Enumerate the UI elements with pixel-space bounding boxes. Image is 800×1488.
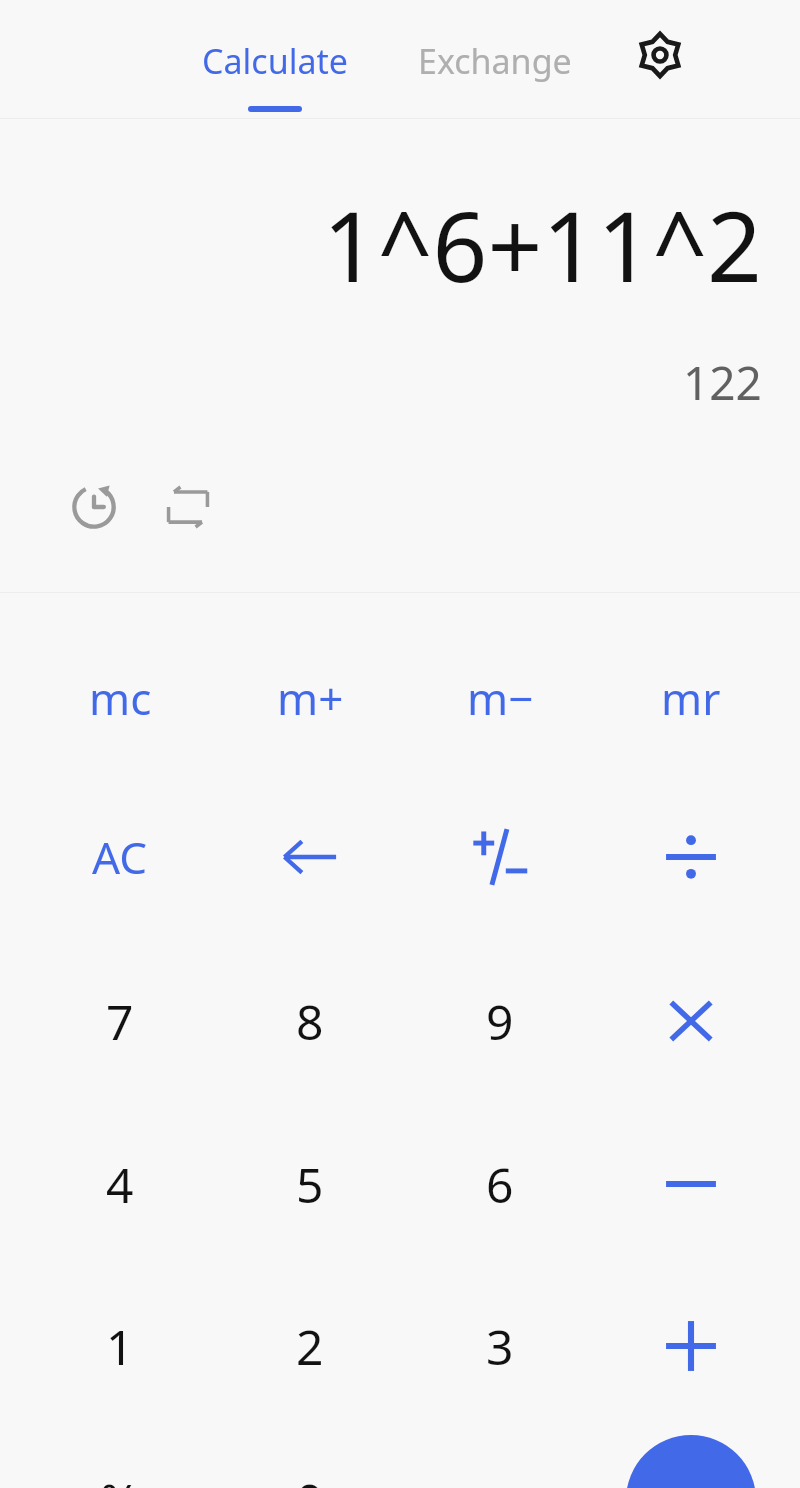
button[interactable]: Multiply xyxy=(616,961,766,1081)
button[interactable]: Settings xyxy=(610,0,800,112)
button[interactable]: History xyxy=(66,479,122,535)
staticText: 2 xyxy=(296,1314,324,1379)
button[interactable]: m− xyxy=(425,638,575,758)
button[interactable]: Backspace xyxy=(235,797,385,917)
staticText: % xyxy=(100,1468,140,1488)
button[interactable]: mc xyxy=(45,638,195,758)
button[interactable]: 2 xyxy=(235,1286,385,1406)
staticText: 9 xyxy=(486,989,514,1054)
button[interactable]: 8 xyxy=(235,961,385,1081)
button[interactable]: 0 xyxy=(235,1440,385,1488)
staticText: 1 xyxy=(106,1314,134,1379)
button[interactable]: Plus minus xyxy=(425,797,575,917)
button[interactable]: Divide xyxy=(616,797,766,917)
staticText: 1^6+11^2 xyxy=(322,179,762,310)
button[interactable]: m+ xyxy=(235,638,385,758)
button[interactable]: Minus xyxy=(616,1124,766,1244)
staticText: 5 xyxy=(296,1152,324,1217)
staticText: AC xyxy=(92,827,148,887)
button[interactable]: 9 xyxy=(425,961,575,1081)
button[interactable]: Plus xyxy=(616,1286,766,1406)
staticText: 3 xyxy=(486,1314,514,1379)
staticText: 122 xyxy=(683,351,762,414)
button[interactable]: Calculate xyxy=(170,0,380,112)
button[interactable]: 5 xyxy=(235,1124,385,1244)
staticText: 4 xyxy=(106,1152,134,1217)
staticText: 8 xyxy=(296,989,324,1054)
button[interactable]: % xyxy=(45,1440,195,1488)
staticText: 6 xyxy=(486,1152,514,1217)
staticText: m− xyxy=(467,668,534,728)
button[interactable]: mr xyxy=(616,638,766,758)
staticText: mr xyxy=(661,668,721,728)
button[interactable]: Equals xyxy=(626,1435,756,1488)
button[interactable]: AC xyxy=(45,797,195,917)
button[interactable]: Mode xyxy=(160,479,216,535)
button[interactable]: 4 xyxy=(45,1124,195,1244)
staticText: mc xyxy=(89,668,152,728)
staticText: m+ xyxy=(277,668,344,728)
staticText: 7 xyxy=(106,989,134,1054)
button[interactable]: 7 xyxy=(45,961,195,1081)
button[interactable]: 1 xyxy=(45,1286,195,1406)
staticText: 0 xyxy=(296,1468,324,1488)
staticText: Exchange xyxy=(418,38,572,84)
staticText: Calculate xyxy=(202,38,348,84)
button[interactable]: 6 xyxy=(425,1124,575,1244)
button[interactable]: 3 xyxy=(425,1286,575,1406)
button[interactable]: Exchange xyxy=(380,0,610,112)
